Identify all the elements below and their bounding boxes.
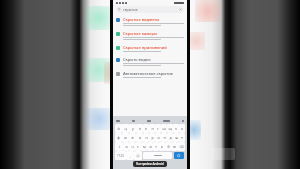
- button[interactable]: Скрыть видео: [113, 55, 187, 69]
- staticText: скрытые: [123, 7, 138, 12]
- button[interactable]: щ: [167, 124, 173, 133]
- button[interactable]: ⇧: [115, 142, 123, 151]
- staticText: ь: [161, 144, 163, 149]
- button[interactable]: ц: [122, 124, 129, 133]
- button[interactable]: ☺: [134, 151, 142, 160]
- staticText: в: [131, 135, 134, 140]
- button[interactable]: й: [115, 124, 122, 133]
- button[interactable]: а: [136, 133, 143, 142]
- button[interactable]: д: [167, 133, 173, 142]
- button[interactable]: ж: [173, 133, 179, 142]
- staticText: з: [175, 126, 177, 131]
- staticText: я: [125, 144, 128, 149]
- staticText: Автоматическое скрытие: [123, 71, 174, 76]
- button[interactable]: с: [135, 142, 141, 151]
- button[interactable]: Автоматическое скрытие: [113, 69, 187, 81]
- staticText: к: [139, 126, 141, 131]
- button[interactable]: л: [161, 133, 167, 142]
- staticText: г: [157, 126, 159, 131]
- staticText: ⌫: [179, 145, 184, 149]
- button[interactable]: в: [129, 133, 136, 142]
- staticText: е: [145, 126, 147, 131]
- button[interactable]: е: [143, 124, 149, 133]
- button[interactable]: Search: [174, 152, 184, 159]
- staticText: Настройки Android: [136, 162, 164, 166]
- button[interactable]: у: [129, 124, 136, 133]
- staticText: ч: [131, 144, 134, 149]
- button[interactable]: ,: [126, 151, 134, 160]
- staticText: л: [163, 135, 166, 140]
- button[interactable]: м: [141, 142, 147, 151]
- staticText: ц: [124, 126, 127, 131]
- staticText: щ: [168, 126, 172, 131]
- staticText: й: [117, 126, 120, 131]
- staticText: и: [149, 144, 152, 149]
- button[interactable]: ш: [161, 124, 167, 133]
- button[interactable]: ы: [122, 133, 129, 142]
- button[interactable]: х: [179, 124, 185, 133]
- staticText: ш: [162, 126, 166, 131]
- staticText: ⇧: [118, 145, 121, 149]
- button[interactable]: г: [155, 124, 161, 133]
- button[interactable]: н: [149, 124, 155, 133]
- button[interactable]: ч: [129, 142, 135, 151]
- staticText: у: [132, 126, 134, 131]
- button[interactable]: и: [147, 142, 153, 151]
- button[interactable]: ь: [159, 142, 165, 151]
- staticText: ?123: [117, 154, 124, 158]
- button[interactable]: Space: [143, 152, 172, 159]
- button[interactable]: ф: [115, 133, 122, 142]
- button[interactable]: Скрытые виджеты: [113, 15, 187, 29]
- staticText: ы: [124, 135, 127, 140]
- button[interactable]: э: [179, 133, 185, 142]
- staticText: ,: [130, 154, 131, 158]
- staticText: ж: [175, 135, 178, 140]
- button[interactable]: з: [173, 124, 179, 133]
- staticText: ф: [117, 135, 120, 140]
- button[interactable]: к: [136, 124, 143, 133]
- button[interactable]: р: [149, 133, 155, 142]
- staticText: э: [181, 135, 183, 140]
- staticText: б: [167, 144, 170, 149]
- staticText: о: [157, 135, 160, 140]
- staticText: ☺: [136, 154, 140, 158]
- staticText: н: [151, 126, 154, 131]
- staticText: Скрытые виджеты: [123, 17, 160, 22]
- staticText: п: [145, 135, 148, 140]
- button[interactable]: ю: [171, 142, 177, 151]
- staticText: м: [143, 144, 146, 149]
- staticText: д: [169, 135, 172, 140]
- staticText: Скрытые приложений: [123, 45, 167, 50]
- button[interactable]: п: [143, 133, 149, 142]
- button[interactable]: б: [165, 142, 171, 151]
- staticText: р: [151, 135, 154, 140]
- button[interactable]: Скрытые камеры: [113, 29, 187, 43]
- staticText: х: [181, 126, 183, 131]
- staticText: ю: [173, 144, 176, 149]
- staticText: с: [137, 144, 139, 149]
- button[interactable]: скрытые: [116, 6, 184, 13]
- button[interactable]: я: [123, 142, 129, 151]
- staticText: а: [139, 135, 141, 140]
- staticText: т: [155, 144, 157, 149]
- button[interactable]: о: [155, 133, 161, 142]
- button[interactable]: ⌫: [177, 142, 185, 151]
- button[interactable]: т: [153, 142, 159, 151]
- staticText: Скрытые камеры: [123, 31, 158, 36]
- staticText: Скрыть видео: [123, 57, 151, 62]
- button[interactable]: ?123: [115, 151, 126, 160]
- button[interactable]: Скрытые приложений: [113, 43, 187, 55]
